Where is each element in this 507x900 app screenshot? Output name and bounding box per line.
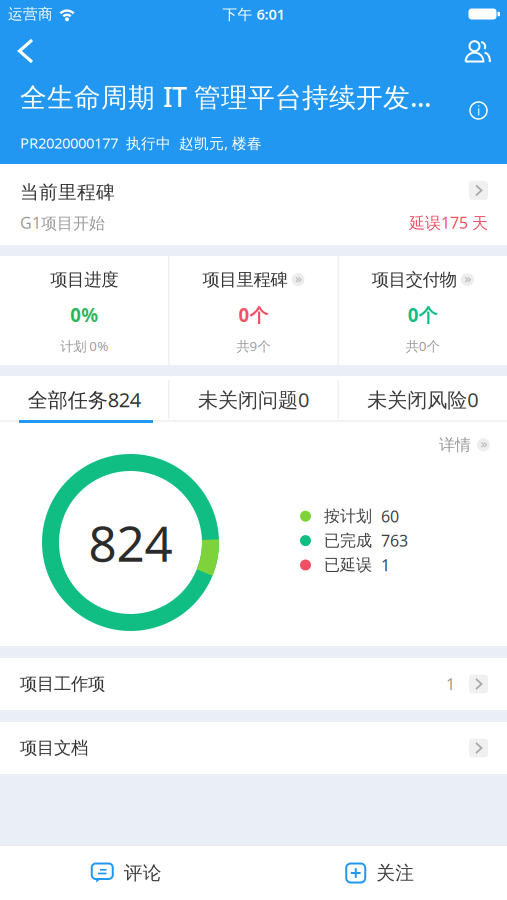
staticText: 延误175 天 [409,212,488,233]
staticText: 按计划 [324,506,372,526]
staticText: 全生命周期 IT 管理平台持续开发... [20,79,431,114]
staticText: 当前里程碑 [20,181,115,204]
button[interactable]: 项目文档 [0,722,507,774]
staticText: 共0个 [406,337,440,355]
button[interactable]: 返回 [0,38,35,64]
staticText: 项目交付物 [372,269,457,290]
staticText: 60 [381,506,399,527]
staticText: 0% [70,302,98,327]
button[interactable]: 未关闭风险0 [339,376,507,423]
staticText: 项目工作项 [20,673,105,695]
staticText: i [477,102,480,118]
staticText: 已完成 [324,531,372,550]
staticText: 未关闭风险0 [367,386,478,413]
staticText: 计划 0% [60,337,108,355]
staticText: 项目进度 [50,269,118,290]
button[interactable]: 评论 [0,846,253,900]
staticText: 关注 [376,861,414,884]
staticText: 全部任务824 [28,386,141,413]
staticText: 0个 [408,302,438,327]
staticText: 763 [381,530,408,551]
button[interactable]: 关注 [253,846,507,900]
staticText: 项目文档 [20,737,88,759]
staticText: 项目里程碑 [202,269,287,290]
button[interactable]: 项目成员 [464,39,507,63]
staticText: 未关闭问题0 [198,386,309,413]
staticText: 运营商 [8,5,53,23]
staticText: 详情 [439,435,471,455]
button[interactable]: 项目工作项 [0,658,507,710]
staticText: 1 [446,673,455,695]
button[interactable]: 全部任务824 [0,376,168,423]
staticText: 评论 [124,861,162,884]
staticText: 下午 6:01 [222,4,284,24]
button[interactable]: 项目信息 [470,73,507,119]
button[interactable]: 未关闭问题0 [169,376,338,423]
staticText: 0个 [238,302,268,327]
staticText: 共9个 [236,337,270,355]
button[interactable]: 当前里程碑 [0,164,507,245]
staticText: 824 [88,510,172,575]
staticText: PR2020000177 执行中 赵凯元, 楼春 [20,133,262,153]
button[interactable]: 详情 [439,423,507,455]
staticText: G1项目开始 [20,212,105,233]
staticText: 已延误 [324,555,372,575]
staticText: 1 [381,554,390,576]
